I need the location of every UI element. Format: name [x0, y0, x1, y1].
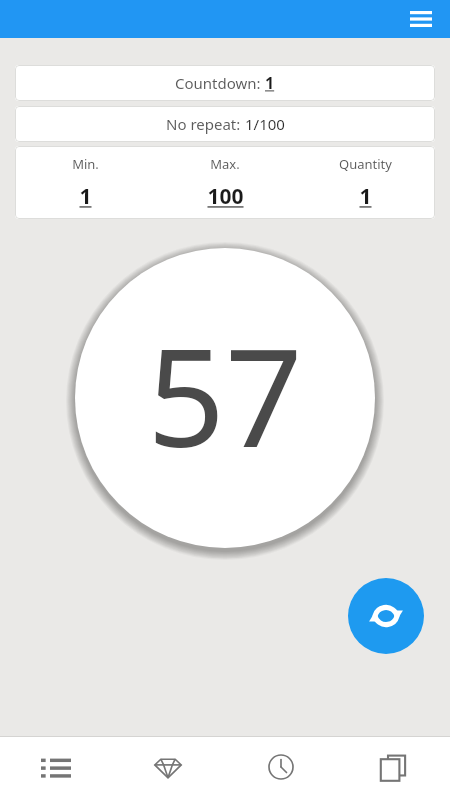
staticText: 1/100	[245, 114, 285, 134]
button[interactable]: History	[224, 737, 337, 800]
staticText: 1	[359, 182, 372, 211]
button[interactable]: Menu	[401, 0, 441, 38]
button[interactable]: Min.	[15, 146, 435, 219]
staticText: 1	[265, 72, 275, 94]
staticText: Countdown:	[175, 73, 265, 93]
button[interactable]: Copy	[337, 737, 450, 800]
staticText: Quantity	[339, 155, 392, 173]
button[interactable]: Countdown:	[15, 65, 435, 101]
staticText: 1	[79, 182, 92, 211]
staticText: No repeat:	[166, 114, 245, 134]
staticText: Max.	[210, 155, 240, 173]
staticText: 100	[207, 182, 244, 211]
staticText: 57	[147, 302, 303, 487]
button[interactable]: Quantity	[295, 146, 435, 219]
button[interactable]: Min.	[15, 146, 155, 219]
button[interactable]: Refresh	[348, 578, 424, 654]
button[interactable]: Max.	[155, 146, 295, 219]
staticText: Min.	[72, 155, 99, 173]
button[interactable]: Gems	[112, 737, 224, 800]
button[interactable]: No repeat:	[15, 106, 435, 142]
button[interactable]: List	[0, 737, 112, 800]
